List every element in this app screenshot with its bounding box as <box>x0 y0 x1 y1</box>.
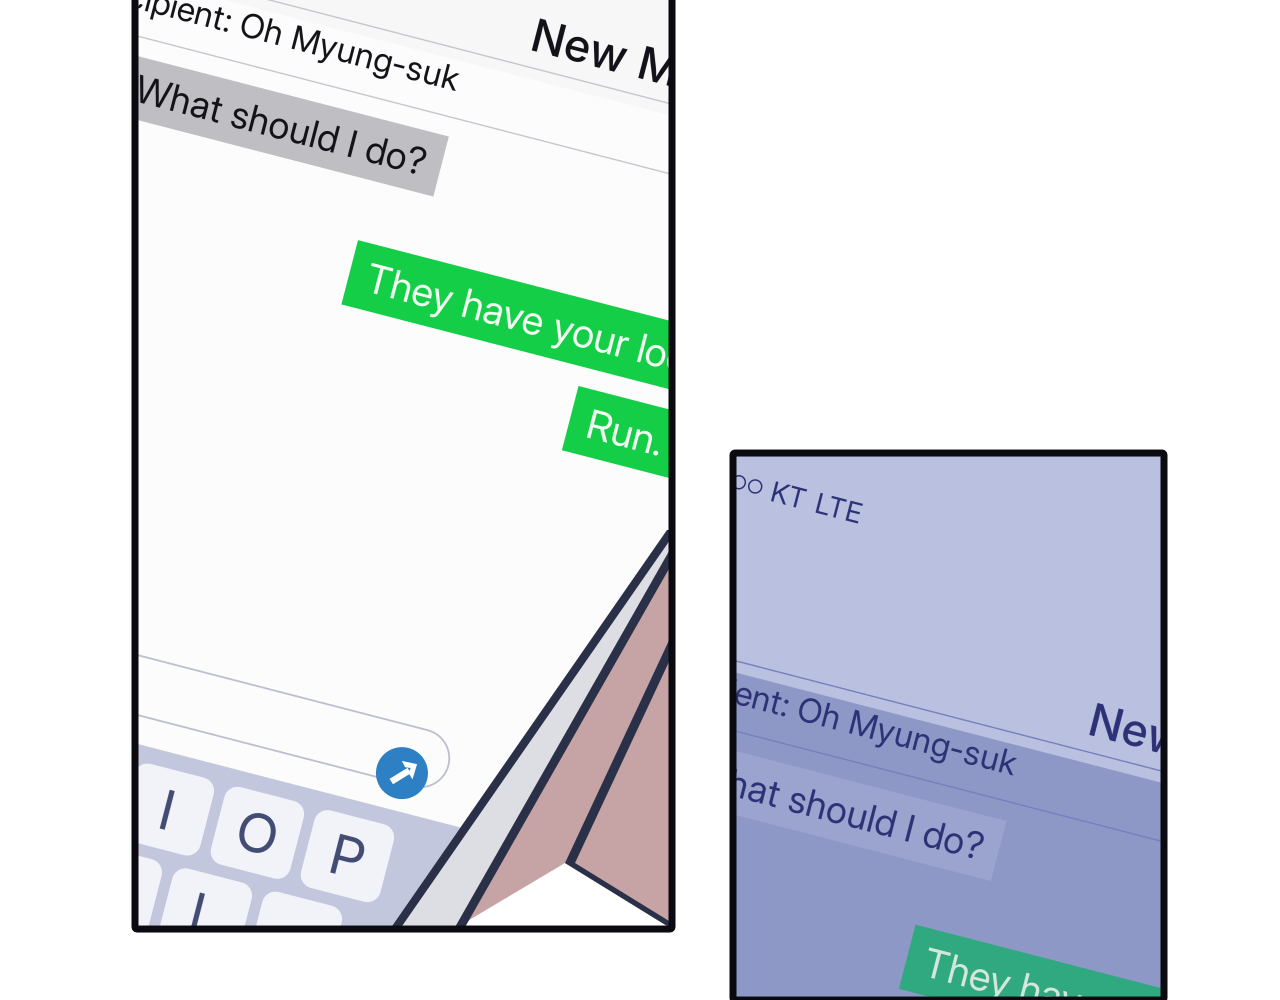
staticText: Run. <box>546 342 624 390</box>
staticText: Recipient: Oh Myung-suk <box>0 46 335 86</box>
staticText: K <box>187 904 224 971</box>
staticText: They have your location. <box>296 256 722 304</box>
staticText: P <box>404 812 439 879</box>
staticText: O <box>308 812 350 879</box>
staticText: New Message <box>952 660 1259 715</box>
staticText: L <box>283 904 314 971</box>
staticText: They have your location. <box>853 940 1279 989</box>
staticText: What should I do? <box>25 132 324 178</box>
staticText: New Message <box>395 0 702 31</box>
staticText: Recipient: Oh Myung-suk <box>512 730 892 771</box>
staticText: LTE <box>633 530 681 564</box>
staticText: I <box>228 812 243 879</box>
staticText: What should I do? <box>582 817 881 862</box>
